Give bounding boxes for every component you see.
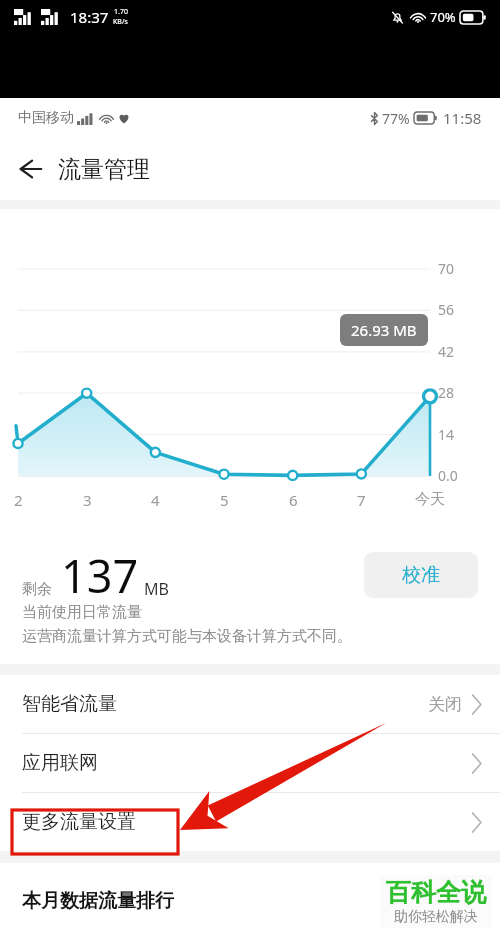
- button[interactable]: 更多流量设置: [0, 793, 500, 851]
- staticText: 0.0: [438, 466, 458, 485]
- staticText: 18:37: [70, 7, 109, 27]
- staticText: 关闭: [428, 694, 462, 715]
- staticText: 42: [438, 342, 455, 361]
- staticText: 7: [357, 490, 366, 510]
- button[interactable]: 校准: [364, 552, 478, 598]
- staticText: 助你轻松解决: [394, 908, 478, 926]
- staticText: 流量管理: [58, 155, 150, 184]
- staticText: 运营商流量计算方式可能与本设备计算方式不同。: [22, 627, 352, 646]
- staticText: 今天: [415, 490, 445, 509]
- staticText: 70: [438, 259, 455, 278]
- staticText: 应用联网: [22, 751, 98, 775]
- staticText: 3: [83, 490, 92, 510]
- staticText: KB/s: [113, 17, 128, 27]
- staticText: 更多流量设置: [22, 810, 136, 834]
- staticText: 137: [61, 545, 139, 606]
- button[interactable]: 智能省流量: [0, 675, 500, 733]
- staticText: 中国移动: [18, 109, 74, 127]
- staticText: 28: [438, 383, 455, 402]
- button[interactable]: Back: [0, 140, 58, 198]
- staticText: 1.70: [114, 7, 128, 17]
- staticText: 56: [438, 300, 455, 319]
- staticText: 本月数据流量排行: [22, 889, 174, 913]
- staticText: 2: [14, 490, 23, 510]
- staticText: 14: [438, 425, 455, 444]
- staticText: 26.93 MB: [351, 320, 417, 340]
- staticText: 校准: [402, 563, 440, 587]
- button[interactable]: 应用联网: [0, 734, 500, 792]
- staticText: 5: [220, 490, 229, 510]
- staticText: 百科全说: [386, 877, 486, 908]
- staticText: 智能省流量: [22, 692, 117, 716]
- staticText: 剩余: [22, 580, 52, 599]
- staticText: 6: [289, 490, 298, 510]
- staticText: MB: [144, 578, 169, 600]
- staticText: 11:58: [443, 108, 482, 128]
- staticText: 77%: [382, 109, 410, 128]
- staticText: 4: [151, 490, 160, 510]
- staticText: 70%: [430, 8, 456, 26]
- staticText: 当前使用日常流量: [22, 603, 142, 622]
